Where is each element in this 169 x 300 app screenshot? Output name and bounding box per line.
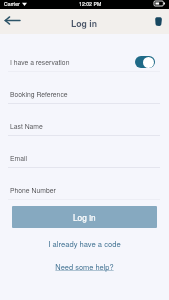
staticText: I have a reservation: [10, 57, 70, 67]
button[interactable]: I have a reservation: [0, 51, 169, 73]
button[interactable]: Booking Reference: [0, 72, 169, 103]
button[interactable]: Email: [0, 136, 169, 167]
staticText: Log in: [71, 17, 98, 29]
button[interactable]: I already have a code: [0, 236, 169, 251]
button[interactable]: Last Name: [0, 104, 169, 135]
staticText: Log in: [73, 211, 96, 223]
staticText: I already have a code: [48, 238, 121, 249]
button[interactable]: Log in: [12, 206, 157, 228]
staticText: Need some help?: [55, 261, 114, 272]
button[interactable]: Phone Number: [0, 168, 169, 199]
staticText: Carrier: [4, 0, 20, 7]
staticText: 12:02 PM: [79, 0, 102, 7]
staticText: Booking Reference: [10, 89, 68, 99]
staticText: Phone Number: [10, 185, 56, 195]
staticText: Last Name: [10, 121, 43, 131]
button[interactable]: Need some help?: [0, 259, 169, 274]
button[interactable]: Back: [2, 10, 22, 30]
button[interactable]: Account: [151, 14, 165, 28]
button[interactable]: I have a reservation: [135, 56, 155, 68]
staticText: Email: [10, 153, 27, 163]
